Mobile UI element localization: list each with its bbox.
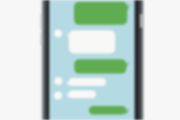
button[interactable]: Messaging conversation [0, 0, 180, 120]
